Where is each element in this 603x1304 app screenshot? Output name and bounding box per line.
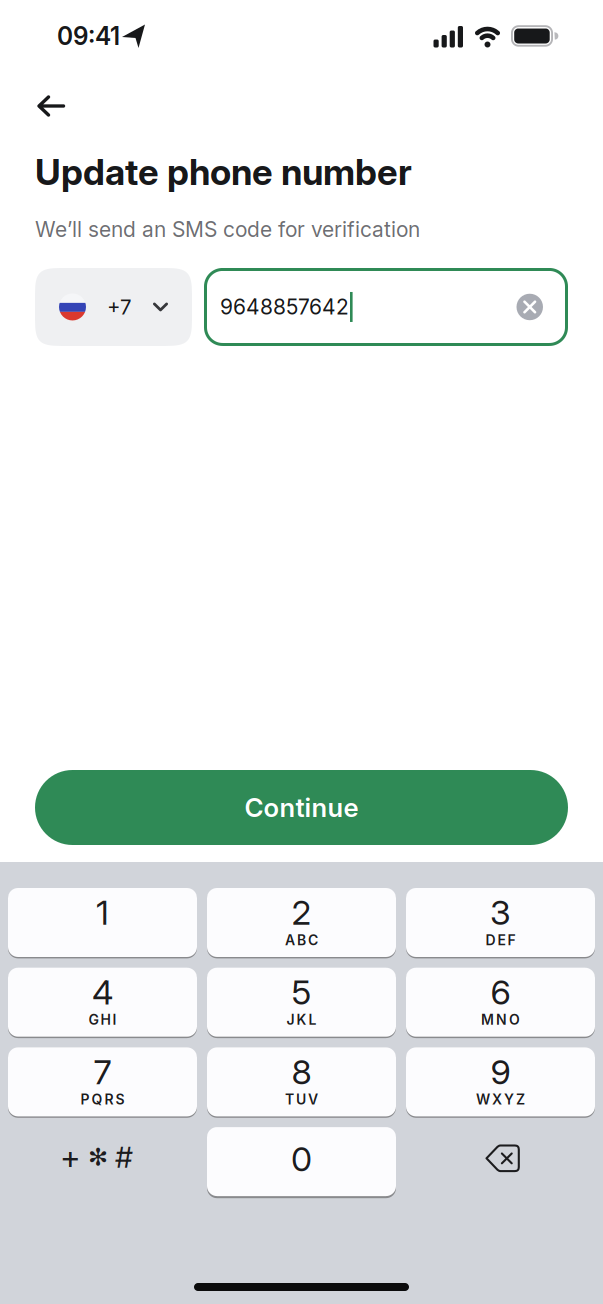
staticText: P Q R S (80, 1091, 124, 1108)
staticText: 3 (490, 892, 511, 933)
staticText: T U V (285, 1091, 318, 1108)
staticText: G H I (88, 1011, 116, 1028)
button[interactable]: Clear text (516, 294, 543, 320)
staticText: D E F (485, 932, 515, 948)
staticText: 8 (291, 1051, 311, 1092)
button[interactable]: 6 (406, 968, 595, 1038)
staticText: 9 (490, 1051, 510, 1092)
staticText: +7 (107, 295, 132, 319)
button[interactable]: 1 (8, 888, 197, 958)
staticText: 4 (92, 972, 113, 1013)
staticText: 09:41 (57, 21, 120, 51)
button[interactable]: 0 (207, 1127, 396, 1197)
staticText: 6 (490, 972, 510, 1013)
staticText: ✻ (88, 1143, 108, 1171)
button[interactable]: 4 (8, 968, 197, 1038)
button[interactable]: Country code +7 (35, 268, 192, 346)
staticText: A B C (285, 932, 318, 948)
staticText: 2 (291, 892, 311, 933)
staticText: # (115, 1140, 133, 1175)
button[interactable]: 5 (207, 968, 396, 1038)
button[interactable]: 9 (406, 1047, 595, 1118)
staticText: 1 (96, 892, 109, 933)
staticText: J K L (286, 1011, 316, 1028)
staticText: M N O (481, 1011, 520, 1028)
button[interactable]: Back (33, 93, 77, 119)
button[interactable]: 8 (207, 1047, 396, 1118)
staticText: Continue (244, 792, 358, 823)
staticText: We’ll send an SMS code for verification (35, 217, 420, 242)
button[interactable]: 2 (207, 888, 396, 958)
button[interactable]: 3 (406, 888, 595, 958)
staticText: 5 (291, 972, 311, 1013)
staticText: W X Y Z (476, 1091, 525, 1108)
button[interactable]: Symbols (8, 1127, 197, 1197)
staticText: 7 (93, 1051, 111, 1092)
staticText: 0 (291, 1138, 312, 1179)
staticText: 9648857642 (220, 294, 349, 320)
staticText: Update phone number (35, 150, 412, 194)
staticText: + (60, 1138, 81, 1177)
button[interactable]: Continue (35, 770, 568, 845)
button[interactable]: 7 (8, 1047, 197, 1118)
button[interactable]: Delete (406, 1127, 595, 1197)
